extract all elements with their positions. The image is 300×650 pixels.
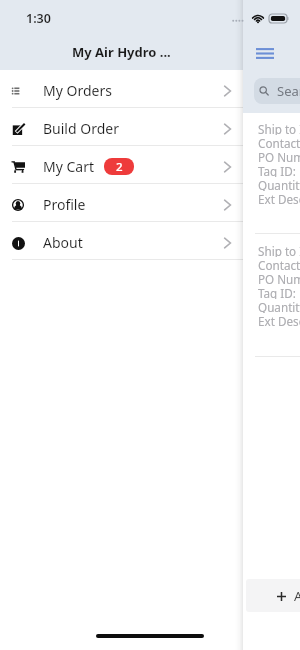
button[interactable]: Profile [0,184,243,221]
staticText: Ship to ID: [258,243,300,257]
staticText: About [43,233,83,252]
staticText: Tag ID: [258,285,300,299]
button[interactable]: Search [254,78,300,104]
staticText: Add Order Line [294,587,300,605]
button[interactable]: My Cart [0,146,243,183]
staticText: Quantity: [258,299,300,313]
staticText: Ext Desc: [258,313,300,327]
staticText: Ext Desc: [258,191,300,205]
staticText: Contact: [258,257,300,271]
button[interactable]: About [0,222,243,259]
staticText: PO Number: [258,271,300,285]
staticText: Contact: [258,135,300,149]
button[interactable]: Open navigation menu [253,42,277,64]
staticText: My Cart [43,157,95,176]
staticText: 2 [116,159,123,175]
staticText: My Air Hydro ... [72,43,171,61]
button[interactable]: My Orders [0,70,243,107]
staticText: Tag ID: [258,163,300,177]
staticText: Build Order [43,119,119,138]
staticText: Quantity: [258,177,300,191]
staticText: PO Number: [258,149,300,163]
staticText: Search [277,82,300,100]
staticText: 1:30 [26,10,51,27]
staticText: My Orders [43,81,112,100]
button[interactable]: Build Order [0,108,243,145]
staticText: Profile [43,195,86,214]
staticText: Ship to ID: [258,121,300,135]
button[interactable]: Add Order Line [246,579,300,612]
